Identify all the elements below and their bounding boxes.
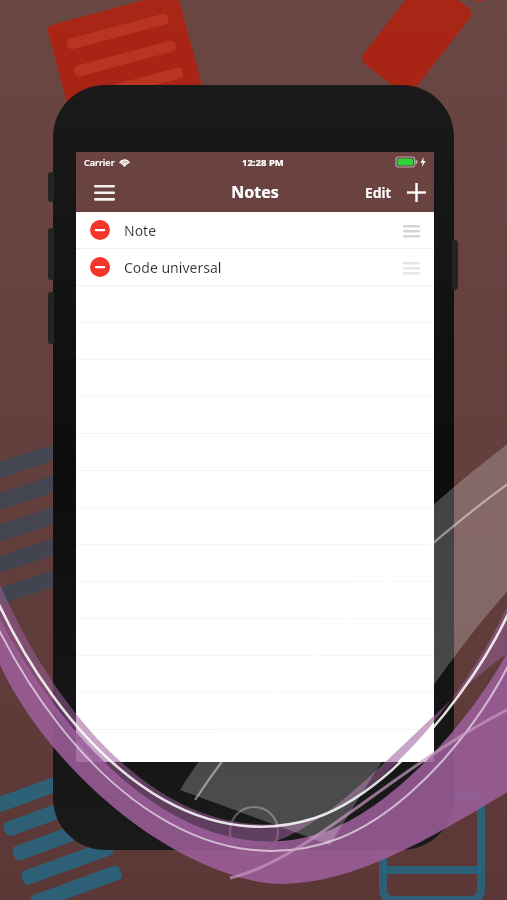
button[interactable]: Menu <box>84 172 124 212</box>
staticText: Carrier <box>84 156 115 168</box>
other: Delete Note <box>90 220 110 240</box>
other: Reorder Code universal <box>403 262 420 273</box>
button[interactable]: Delete Code universal <box>76 249 434 286</box>
other: Reorder Note <box>403 225 420 236</box>
staticText: Note <box>124 221 157 240</box>
staticText: Code universal <box>124 258 222 277</box>
staticText: Edit <box>365 183 392 202</box>
other: Delete Code universal <box>90 257 110 277</box>
staticText: Notes <box>231 181 279 203</box>
staticText: 12:28 PM <box>242 156 284 169</box>
button[interactable]: Add note <box>398 174 434 210</box>
button[interactable]: Delete Note <box>76 212 434 249</box>
button[interactable]: Edit <box>359 175 398 210</box>
